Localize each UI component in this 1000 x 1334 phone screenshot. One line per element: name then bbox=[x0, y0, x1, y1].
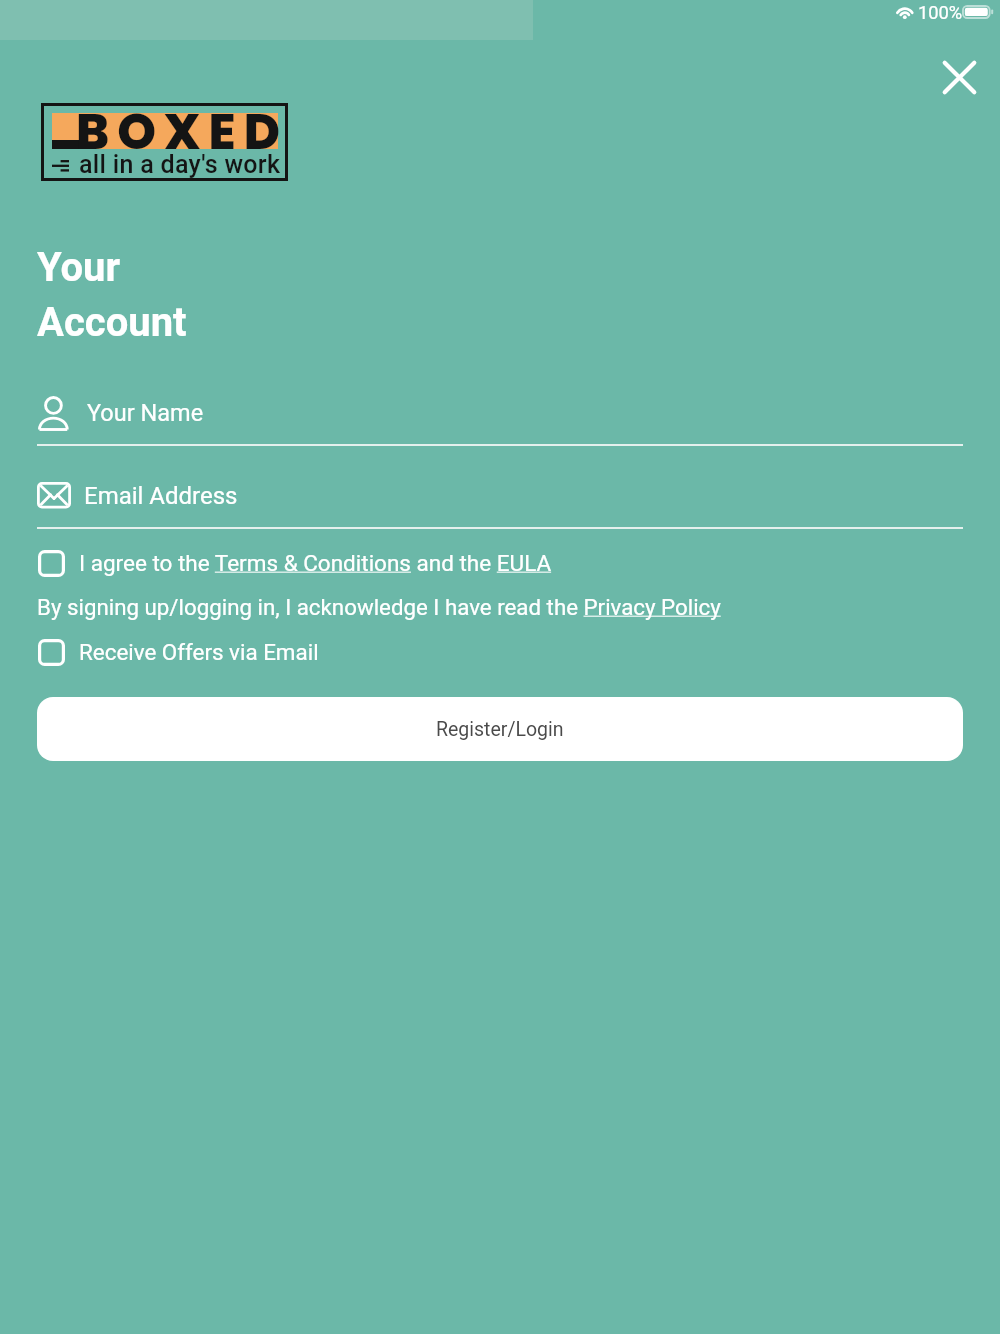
button[interactable]: I agree to the Terms & Conditions and th… bbox=[36, 545, 736, 581]
staticText: 100% bbox=[918, 2, 963, 23]
staticText: Your Name bbox=[87, 399, 204, 427]
staticText: Receive Offers via Email bbox=[79, 639, 319, 665]
staticText: all in a day's work bbox=[79, 150, 281, 179]
staticText: By signing up/logging in, I acknowledge … bbox=[37, 594, 721, 620]
staticText: BOXED bbox=[76, 97, 289, 166]
staticText: Your bbox=[37, 244, 121, 291]
button[interactable]: Your Name bbox=[37, 388, 963, 446]
button[interactable]: Close bbox=[927, 45, 991, 109]
staticText: I agree to the Terms & Conditions and th… bbox=[79, 550, 552, 576]
staticText: Account bbox=[37, 299, 187, 346]
button[interactable]: Receive Offers via Email bbox=[36, 634, 536, 670]
button[interactable]: Email Address bbox=[37, 471, 963, 529]
staticText: Register/Login bbox=[436, 718, 564, 741]
staticText: Email Address bbox=[84, 482, 238, 510]
button[interactable]: Register/Login bbox=[37, 697, 963, 761]
